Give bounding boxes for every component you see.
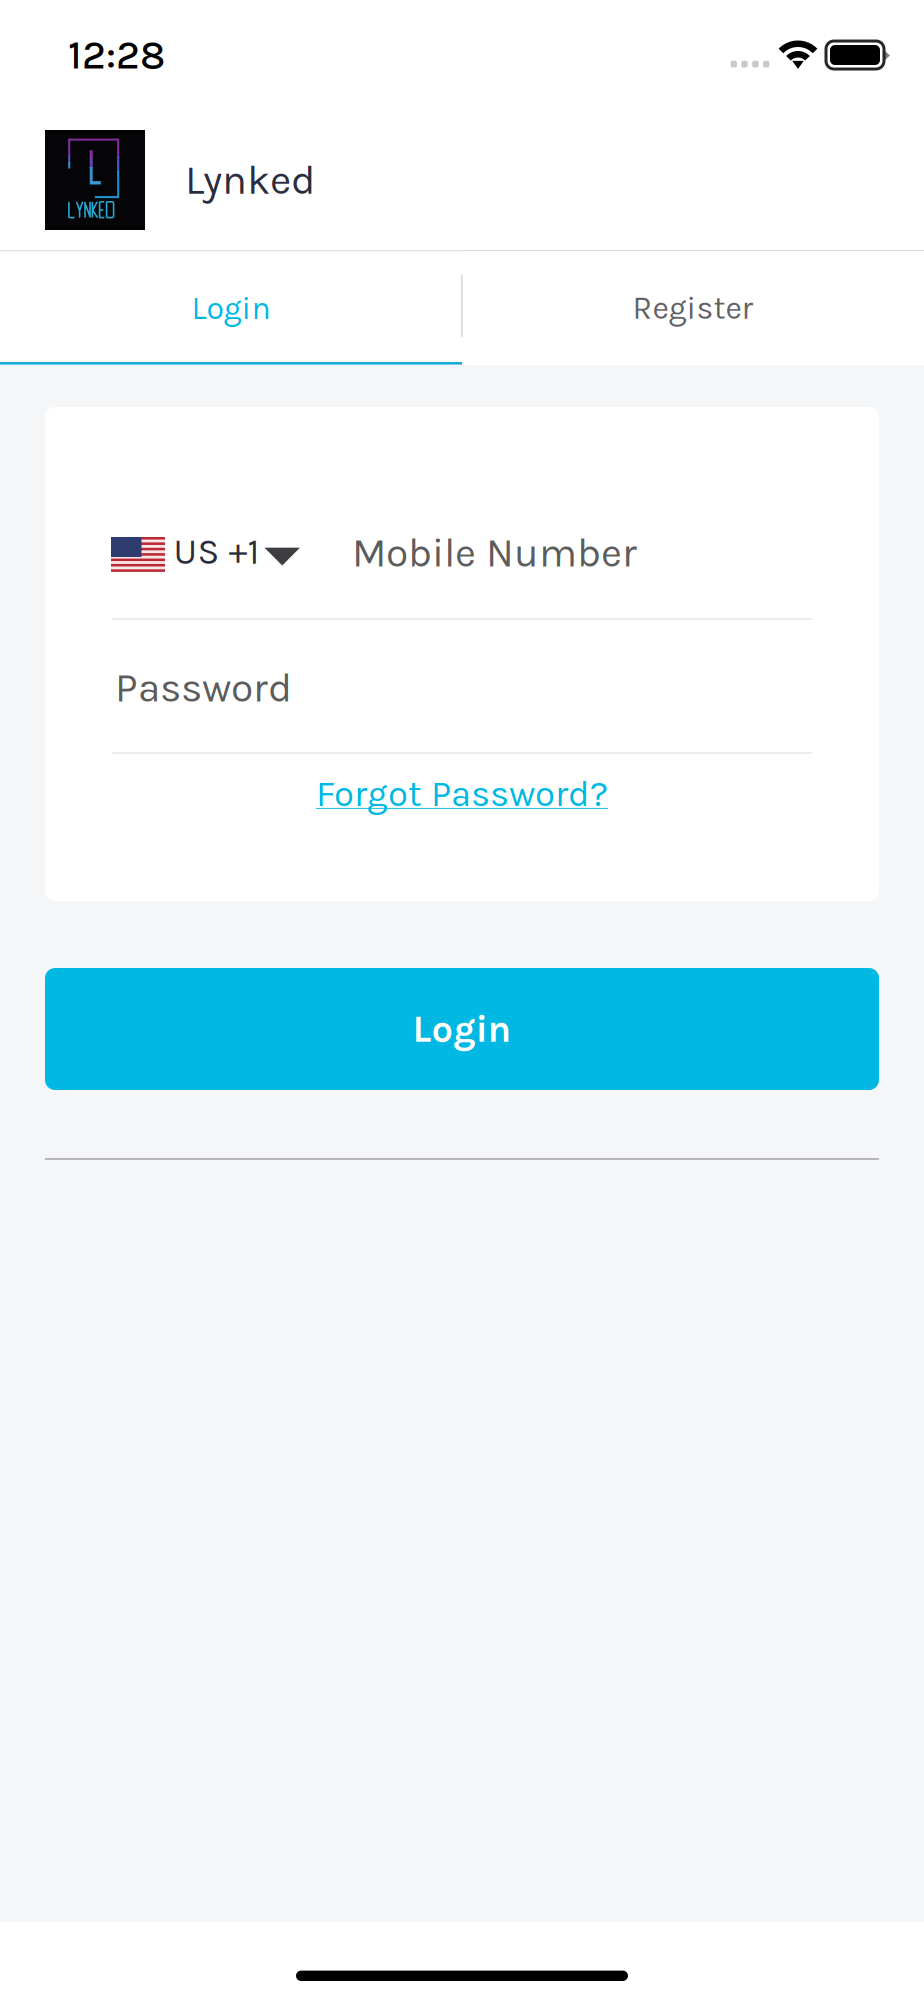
staticText: 12:28 [68,31,165,79]
staticText: US +1 [173,531,259,573]
staticText: Lynked [185,156,315,204]
staticText: Forgot Password? [316,773,608,815]
staticText: Password [115,664,292,712]
button[interactable]: Password [112,642,812,736]
button[interactable]: Select country code, US +1 [105,519,365,579]
staticText: Login [412,1007,511,1051]
staticText: Register [632,289,753,327]
button[interactable]: Login [45,968,879,1090]
button[interactable]: Forgot Password? [307,772,617,816]
staticText: Mobile Number [352,529,637,577]
button[interactable]: Register [462,251,924,365]
button[interactable]: Login [0,251,462,365]
staticText: Login [191,289,270,327]
button[interactable]: Mobile Number [348,507,812,601]
